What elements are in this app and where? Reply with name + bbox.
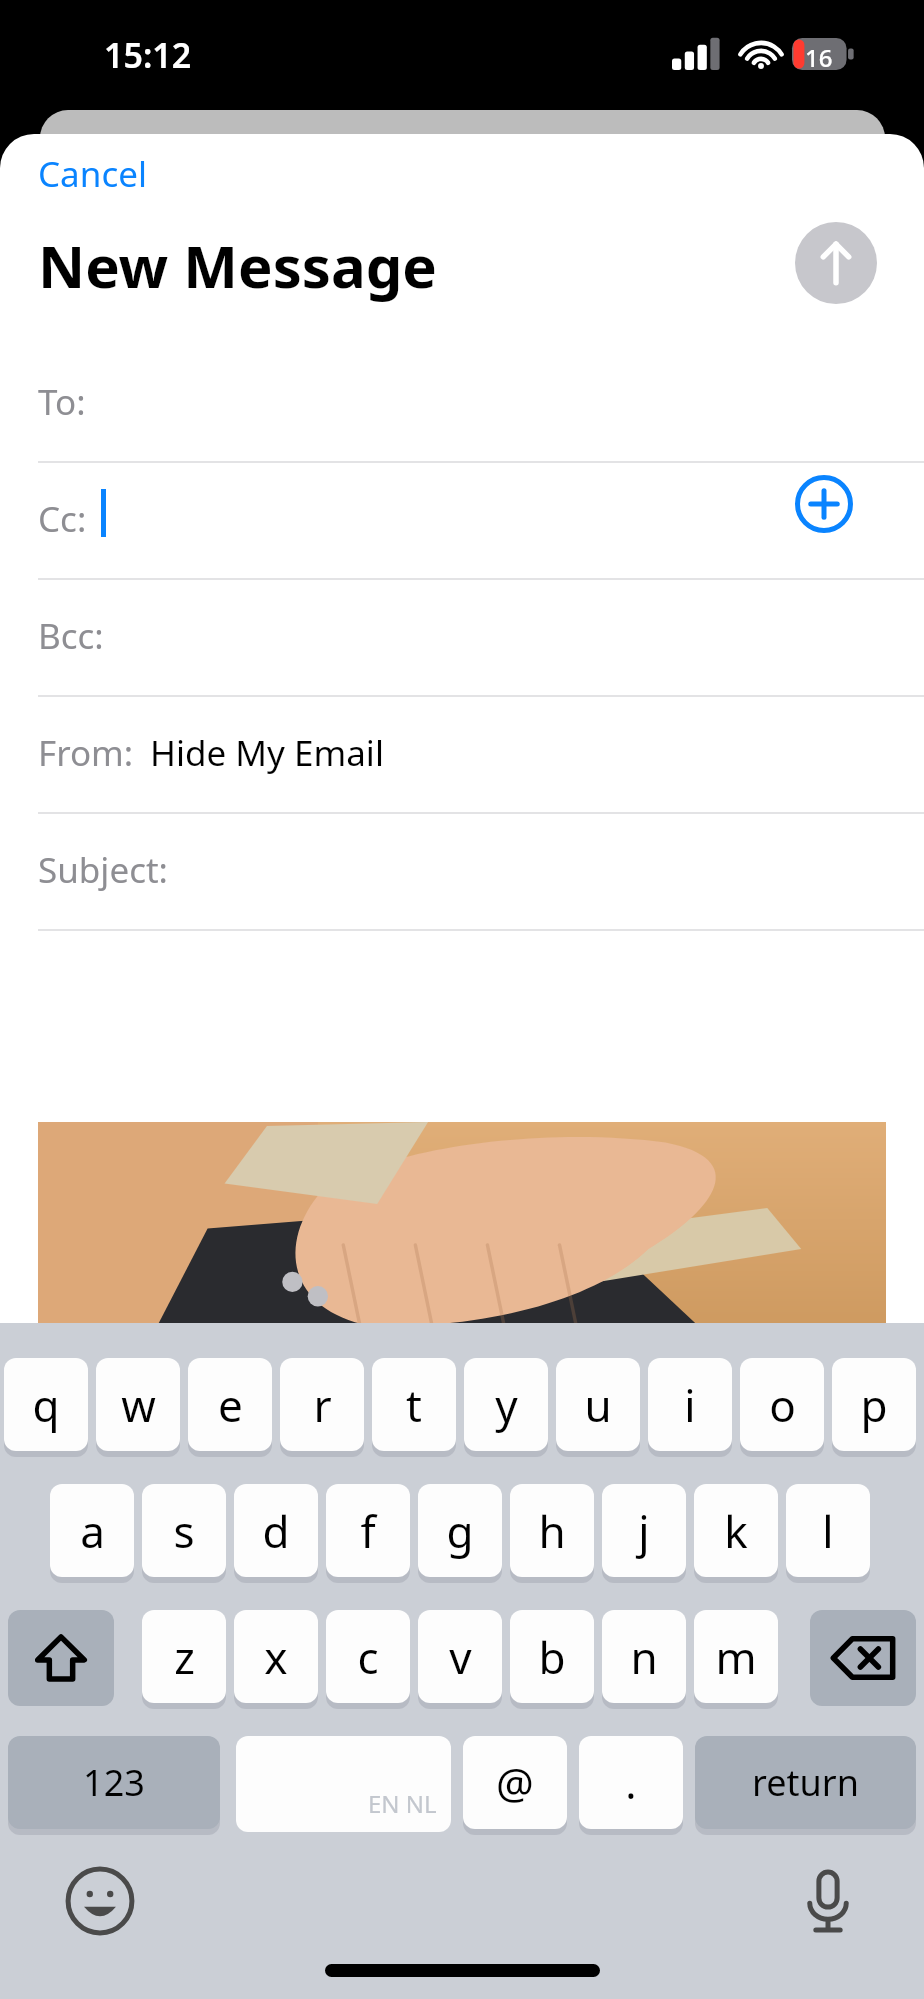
staticText: y [495,1375,518,1435]
staticText: Bcc: [38,612,104,660]
button[interactable]: c [326,1610,410,1703]
button[interactable]: Cancel [24,140,161,208]
staticText: f [360,1501,376,1561]
staticText: o [769,1375,796,1435]
button[interactable]: j [602,1484,686,1577]
button[interactable]: Attached photo [38,1122,886,1327]
staticText: k [724,1501,748,1561]
button[interactable]: o [740,1358,824,1451]
button[interactable]: To: [0,344,924,461]
staticText: i [684,1375,696,1435]
button[interactable]: Cc: [0,461,924,578]
staticText: @ [496,1754,534,1811]
button[interactable]: w [96,1358,180,1451]
button[interactable]: Delete [810,1610,916,1706]
staticText: To: [38,378,86,426]
button[interactable]: Subject: [0,812,924,929]
staticText: New Message [38,226,437,305]
staticText: m [715,1627,757,1687]
button[interactable]: y [464,1358,548,1451]
staticText: e [218,1375,243,1435]
button[interactable]: z [142,1610,226,1703]
staticText: l [822,1501,834,1561]
staticText: EN NL [368,1787,437,1820]
staticText: c [357,1627,379,1687]
button[interactable]: q [4,1358,88,1451]
button[interactable]: e [188,1358,272,1451]
staticText: 15:12 [104,32,192,78]
button[interactable]: Send [795,222,877,304]
button[interactable]: i [648,1358,732,1451]
button[interactable]: return [695,1736,916,1829]
button[interactable]: From: [0,695,924,812]
button[interactable]: x [234,1610,318,1703]
staticText: 16 [805,41,833,74]
staticText: From: [38,729,134,777]
staticText: a [80,1501,105,1561]
staticText: Cc: [38,495,87,543]
staticText: t [406,1375,422,1435]
staticText: d [262,1501,290,1561]
staticText: p [860,1375,888,1435]
button[interactable]: Bcc: [0,578,924,695]
button[interactable]: k [694,1484,778,1577]
button[interactable]: r [280,1358,364,1451]
staticText: j [638,1501,650,1561]
staticText: z [174,1627,195,1687]
staticText: b [538,1627,566,1687]
staticText: x [264,1627,288,1687]
staticText: q [32,1375,60,1435]
staticText: s [173,1501,195,1561]
button[interactable]: @ [463,1736,567,1829]
button[interactable]: 123 [8,1736,220,1829]
button[interactable]: Add recipient [795,475,853,533]
button[interactable]: a [50,1484,134,1577]
staticText: h [538,1501,566,1561]
button[interactable]: n [602,1610,686,1703]
staticText: g [446,1501,474,1561]
staticText: w [121,1375,156,1435]
button[interactable]: s [142,1484,226,1577]
button[interactable]: v [418,1610,502,1703]
button[interactable]: g [418,1484,502,1577]
button[interactable]: Shift [8,1610,114,1706]
button[interactable]: p [832,1358,916,1451]
button[interactable]: Dictate [790,1863,866,1939]
button[interactable]: m [694,1610,778,1703]
staticText: . [625,1754,637,1811]
button[interactable]: b [510,1610,594,1703]
button[interactable]: Space [236,1736,451,1832]
button[interactable]: h [510,1484,594,1577]
staticText: return [752,1758,859,1807]
button[interactable]: f [326,1484,410,1577]
button[interactable]: u [556,1358,640,1451]
button[interactable]: l [786,1484,870,1577]
button[interactable]: t [372,1358,456,1451]
staticText: Hide My Email [150,729,384,777]
button[interactable]: . [579,1736,683,1829]
staticText: v [449,1627,472,1687]
button[interactable]: d [234,1484,318,1577]
staticText: 123 [83,1758,145,1807]
button[interactable]: Emoji [62,1863,138,1939]
staticText: Cancel [38,150,147,198]
staticText: u [584,1375,612,1435]
staticText: r [313,1375,332,1435]
staticText: Subject: [38,846,168,894]
staticText: n [630,1627,658,1687]
